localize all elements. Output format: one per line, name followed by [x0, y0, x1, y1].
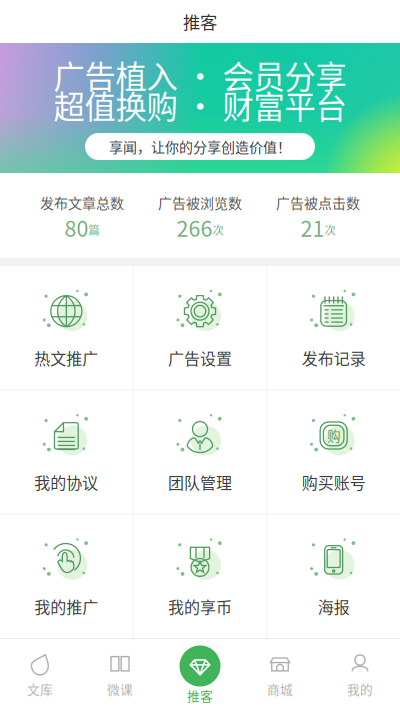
button[interactable]: 我的推广: [0, 515, 133, 638]
staticText: 微课: [107, 680, 133, 698]
staticText: 购: [327, 426, 340, 445]
staticText: 次: [212, 221, 223, 238]
button[interactable]: 热文推广: [0, 266, 133, 389]
staticText: 购买账号: [302, 470, 366, 494]
staticText: 商城: [267, 680, 293, 698]
staticText: 我的推广: [34, 595, 98, 618]
button[interactable]: 我的享币: [134, 515, 266, 638]
staticText: 团队管理: [168, 470, 232, 494]
button[interactable]: 推客: [160, 638, 240, 710]
staticText: 21: [300, 212, 324, 243]
staticText: 广告植入 · 会员分享: [53, 52, 346, 98]
button[interactable]: 团队管理: [134, 390, 266, 514]
button[interactable]: 我的: [320, 638, 400, 710]
staticText: 我的享币: [168, 595, 232, 618]
button[interactable]: 海报: [267, 515, 400, 638]
staticText: 266: [176, 212, 212, 243]
staticText: 广告设置: [168, 346, 232, 369]
staticText: 发布记录: [302, 346, 366, 369]
button[interactable]: 文库: [0, 638, 80, 710]
staticText: 我的: [347, 680, 373, 698]
staticText: 海报: [318, 595, 350, 618]
staticText: 超值换购 · 财富平台: [53, 82, 346, 128]
staticText: 80: [64, 212, 88, 243]
staticText: 篇: [88, 221, 99, 238]
staticText: 推客: [183, 9, 217, 34]
staticText: 广告被浏览数: [158, 192, 242, 213]
staticText: 我的协议: [34, 470, 98, 494]
staticText: 次: [324, 221, 335, 238]
staticText: 广告被点击数: [276, 192, 360, 213]
button[interactable]: 微课: [80, 638, 160, 710]
button[interactable]: 商城: [240, 638, 320, 710]
button[interactable]: 购: [267, 390, 400, 514]
button[interactable]: 广告设置: [134, 266, 266, 389]
button[interactable]: 我的协议: [0, 390, 133, 514]
staticText: 推客: [187, 686, 213, 705]
staticText: 享闻，让你的分享创造价值！: [109, 136, 291, 157]
staticText: 文库: [27, 680, 53, 698]
button[interactable]: 发布记录: [267, 266, 400, 389]
staticText: 热文推广: [34, 346, 98, 369]
staticText: 发布文章总数: [40, 192, 124, 213]
